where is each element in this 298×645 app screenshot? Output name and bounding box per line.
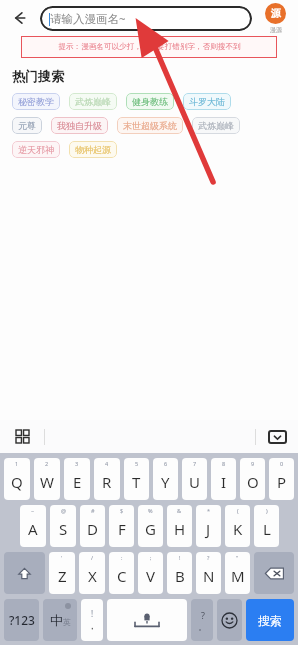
button[interactable]: Space bbox=[107, 599, 187, 641]
staticText: N bbox=[203, 566, 215, 586]
button[interactable]: 2 bbox=[34, 458, 60, 500]
button[interactable]: 中 bbox=[43, 599, 77, 641]
staticText: O bbox=[247, 472, 259, 492]
button[interactable]: ' bbox=[49, 552, 75, 594]
staticText: 4 bbox=[105, 460, 109, 467]
staticText: * bbox=[207, 507, 211, 514]
staticText: 8 bbox=[222, 460, 226, 467]
button[interactable]: / bbox=[79, 552, 105, 594]
button[interactable]: Toolbar menu bbox=[0, 420, 44, 453]
button[interactable]: ~ bbox=[20, 505, 46, 547]
staticText: F bbox=[118, 519, 126, 539]
button[interactable]: ) bbox=[254, 505, 279, 547]
staticText: R bbox=[102, 472, 112, 492]
staticText: ( bbox=[237, 507, 239, 514]
button[interactable]: : bbox=[109, 552, 134, 594]
staticText: P bbox=[277, 472, 287, 492]
staticText: 。 bbox=[198, 621, 207, 632]
staticText: " bbox=[236, 554, 239, 561]
button[interactable]: 请输入漫画名~ bbox=[40, 6, 252, 31]
button[interactable]: $ bbox=[109, 505, 134, 547]
button[interactable]: 8 bbox=[211, 458, 236, 500]
button[interactable]: Hide keyboard bbox=[256, 420, 298, 453]
staticText: 请输入漫画名~ bbox=[50, 11, 126, 27]
button[interactable]: 武炼巅峰 bbox=[192, 117, 240, 134]
button[interactable]: 0 bbox=[269, 458, 294, 500]
button[interactable]: 5 bbox=[124, 458, 149, 500]
staticText: ; bbox=[150, 554, 152, 561]
staticText: # bbox=[91, 507, 95, 514]
staticText: 漫源 bbox=[270, 26, 282, 34]
staticText: K bbox=[233, 519, 243, 539]
staticText: T bbox=[132, 472, 141, 492]
staticText: 武炼巅峰 bbox=[75, 96, 111, 107]
staticText: 秘密教学 bbox=[18, 96, 54, 107]
staticText: 物种起源 bbox=[75, 144, 111, 155]
button[interactable]: ( bbox=[225, 505, 250, 547]
staticText: A bbox=[28, 519, 38, 539]
button[interactable]: 漫源 bbox=[252, 0, 298, 36]
button[interactable]: 健身教练 bbox=[126, 93, 174, 110]
staticText: 斗罗大陆 bbox=[189, 96, 225, 107]
staticText: ! bbox=[179, 554, 181, 561]
button[interactable]: ? bbox=[196, 552, 221, 594]
staticText: : bbox=[121, 554, 123, 561]
button[interactable]: * bbox=[196, 505, 221, 547]
button[interactable]: & bbox=[167, 505, 192, 547]
button[interactable]: 1 bbox=[4, 458, 30, 500]
staticText: $ bbox=[120, 507, 124, 514]
other: Emoji bbox=[221, 612, 238, 629]
staticText: W bbox=[40, 472, 54, 492]
button[interactable]: Shift bbox=[4, 552, 45, 594]
staticText: Y bbox=[161, 472, 170, 492]
button[interactable]: Back bbox=[0, 0, 40, 36]
staticText: @ bbox=[61, 507, 66, 514]
staticText: L bbox=[263, 519, 271, 539]
button[interactable]: # bbox=[80, 505, 105, 547]
staticText: 搜索 bbox=[258, 613, 282, 628]
button[interactable]: 3 bbox=[64, 458, 90, 500]
staticText: H bbox=[174, 519, 186, 539]
other: Space bbox=[127, 610, 167, 630]
staticText: 热门搜索 bbox=[12, 68, 64, 84]
button[interactable]: 武炼巅峰 bbox=[69, 93, 117, 110]
staticText: U bbox=[189, 472, 200, 492]
button[interactable]: ! bbox=[81, 599, 103, 641]
staticText: J bbox=[206, 519, 211, 539]
staticText: ?123 bbox=[9, 612, 35, 628]
staticText: 武炼巅峰 bbox=[198, 120, 234, 131]
button[interactable]: 我独自升级 bbox=[51, 117, 108, 134]
button[interactable]: 物种起源 bbox=[69, 141, 117, 158]
button[interactable]: ; bbox=[138, 552, 163, 594]
button[interactable]: " bbox=[225, 552, 250, 594]
button[interactable]: @ bbox=[50, 505, 76, 547]
button[interactable]: 搜索 bbox=[246, 599, 294, 641]
button[interactable]: ? bbox=[191, 599, 213, 641]
button[interactable]: Backspace bbox=[254, 552, 294, 594]
button[interactable]: 7 bbox=[182, 458, 207, 500]
staticText: 3 bbox=[75, 460, 79, 467]
staticText: 中 bbox=[50, 612, 63, 628]
staticText: ! bbox=[91, 608, 94, 619]
button[interactable]: 秘密教学 bbox=[12, 93, 60, 110]
staticText: X bbox=[88, 566, 97, 586]
button[interactable]: ?123 bbox=[4, 599, 39, 641]
button[interactable]: 末世超级系统 bbox=[117, 117, 183, 134]
staticText: ? bbox=[207, 554, 210, 561]
button[interactable]: ! bbox=[167, 552, 192, 594]
button[interactable]: % bbox=[138, 505, 163, 547]
staticText: 提示：漫画名可以少打，但不要打错别字，否则搜不到 bbox=[58, 42, 241, 52]
staticText: E bbox=[73, 472, 82, 492]
button[interactable]: 6 bbox=[153, 458, 178, 500]
staticText: B bbox=[175, 566, 185, 586]
button[interactable]: 4 bbox=[94, 458, 120, 500]
staticText: Z bbox=[58, 566, 67, 586]
staticText: ) bbox=[266, 507, 268, 514]
button[interactable]: Emoji bbox=[217, 599, 242, 641]
button[interactable]: 元尊 bbox=[12, 117, 42, 134]
staticText: ? bbox=[201, 609, 205, 621]
button[interactable]: 逆天邪神 bbox=[12, 141, 60, 158]
button[interactable]: 9 bbox=[240, 458, 265, 500]
button[interactable]: 斗罗大陆 bbox=[183, 93, 231, 110]
staticText: C bbox=[117, 566, 127, 586]
